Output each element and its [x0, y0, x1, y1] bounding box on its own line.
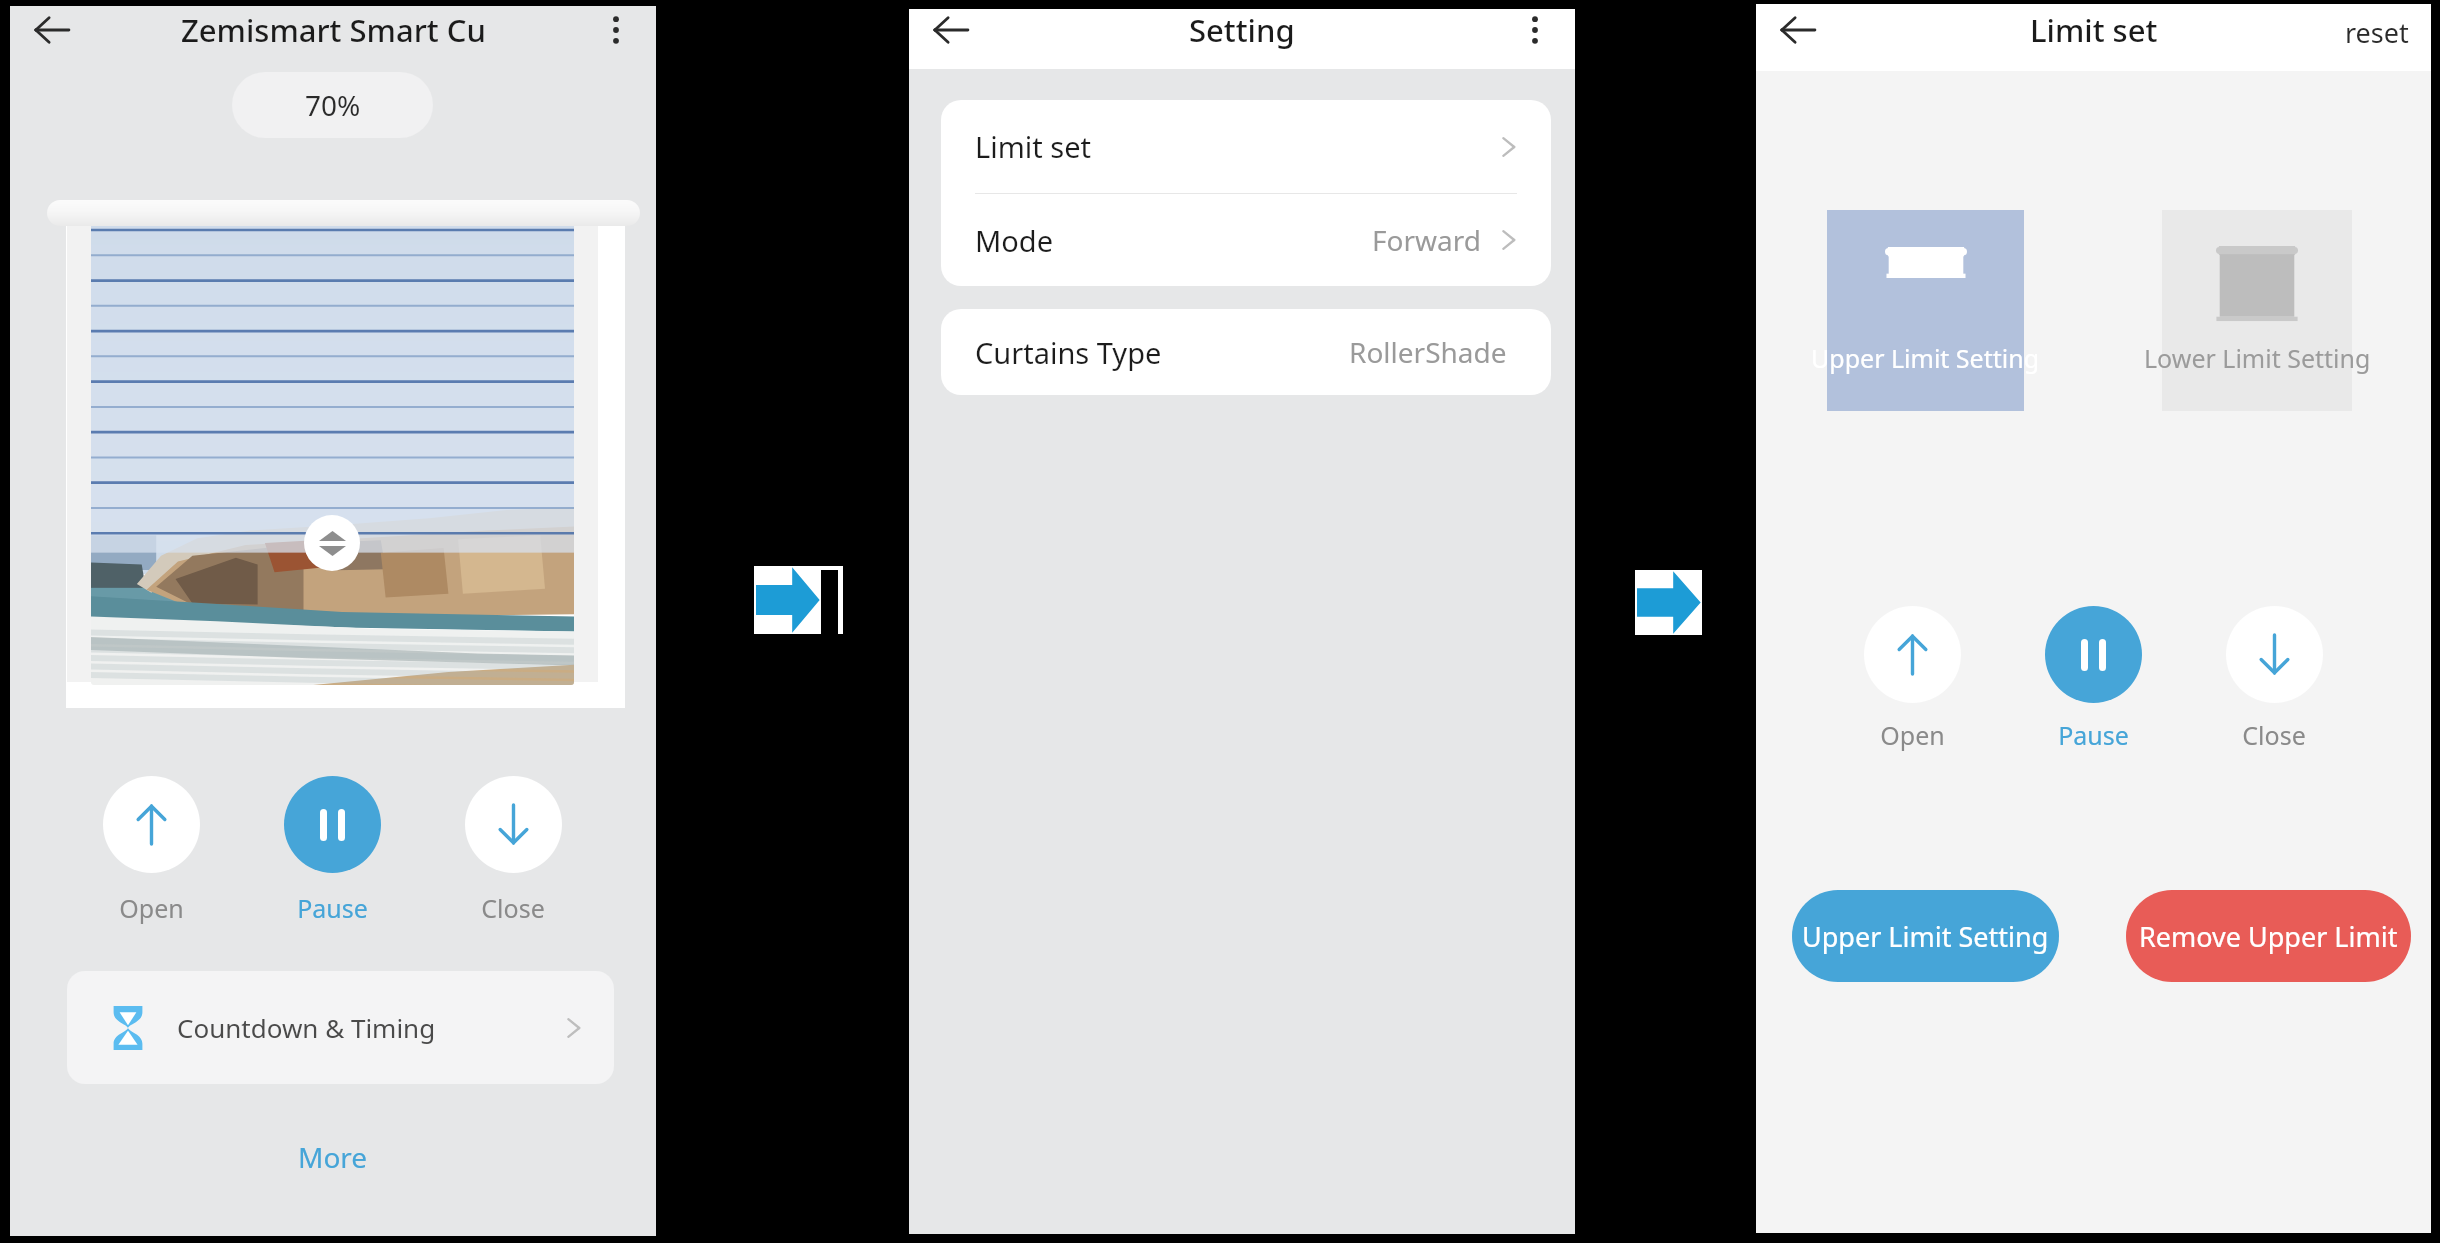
button[interactable]: Upper Limit Setting — [1827, 210, 2024, 411]
button[interactable]: reset — [2323, 4, 2431, 56]
staticText: Upper Limit Setting — [1802, 918, 2049, 955]
button[interactable]: Countdown & Timing — [67, 971, 614, 1084]
staticText: Pause — [2058, 718, 2129, 752]
staticText: Countdown & Timing — [177, 1010, 436, 1045]
button[interactable]: Open — [81, 776, 221, 925]
button[interactable]: Remove Upper Limit — [2126, 890, 2411, 982]
staticText: More — [298, 1138, 368, 1176]
staticText: reset — [2345, 14, 2409, 46]
button[interactable]: Back — [24, 6, 80, 54]
staticText: Zemismart Smart Cu — [181, 9, 486, 51]
staticText: Lower Limit Setting — [2144, 341, 2371, 375]
staticText: Upper Limit Setting — [1811, 341, 2040, 375]
staticText: Curtains Type — [975, 333, 1162, 372]
staticText: Limit set — [2030, 9, 2158, 51]
button[interactable]: Upper Limit Setting — [1792, 890, 2059, 982]
staticText: Pause — [297, 891, 368, 925]
button[interactable]: Close — [443, 776, 583, 925]
staticText: Limit set — [975, 127, 1092, 166]
button[interactable]: Open — [1842, 606, 1982, 752]
button[interactable]: Mode — [941, 194, 1551, 286]
button[interactable]: 70% — [232, 72, 433, 138]
staticText: Mode — [975, 221, 1054, 260]
button[interactable]: More options — [592, 6, 640, 54]
button[interactable]: Lower Limit Setting — [2162, 210, 2352, 411]
button[interactable]: More options — [1511, 9, 1559, 51]
button[interactable]: More — [282, 1128, 384, 1186]
staticText: Remove Upper Limit — [2139, 918, 2398, 955]
staticText: Forward — [1372, 221, 1481, 259]
button[interactable]: Back — [923, 9, 979, 51]
button[interactable]: Curtains Type — [941, 309, 1551, 395]
staticText: 70% — [305, 86, 361, 124]
button[interactable]: Close — [2204, 606, 2344, 752]
button[interactable]: Back — [1770, 4, 1826, 56]
staticText: Setting — [1189, 9, 1295, 51]
staticText: Open — [119, 891, 184, 925]
button[interactable]: Drag curtain position — [304, 515, 360, 571]
button[interactable]: Pause — [2023, 606, 2163, 752]
button[interactable]: Limit set — [941, 100, 1551, 193]
staticText: Close — [2242, 718, 2306, 752]
staticText: Close — [481, 891, 545, 925]
staticText: RollerShade — [1349, 333, 1507, 371]
button[interactable]: Pause — [262, 776, 402, 925]
staticText: Open — [1880, 718, 1945, 752]
